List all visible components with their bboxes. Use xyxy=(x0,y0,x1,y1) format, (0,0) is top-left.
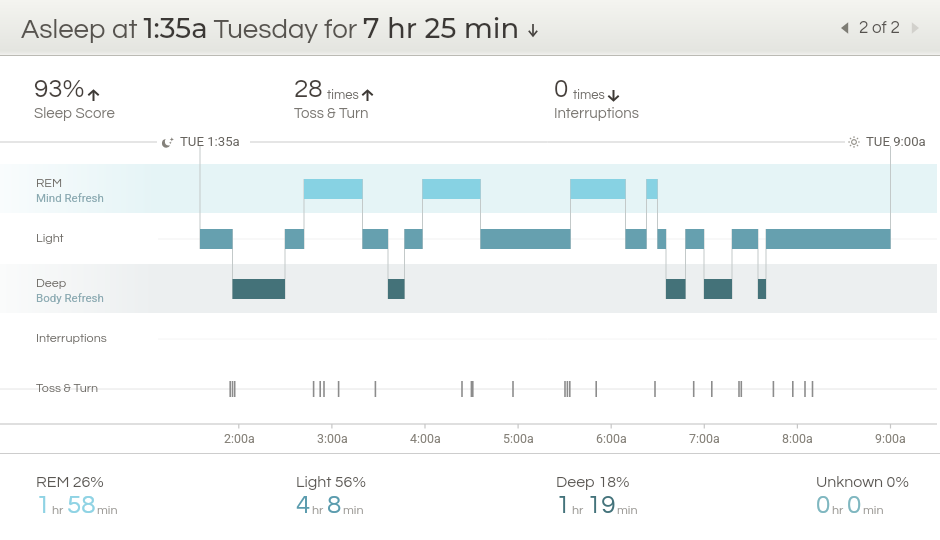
staticText: TUE 1:35a xyxy=(180,134,240,149)
staticText: Asleep at 1:35a Tuesday for 7 hr 25 min xyxy=(21,11,520,45)
button[interactable]: Deep xyxy=(36,277,104,304)
staticText: Deep 18% xyxy=(556,474,630,490)
staticText: hr xyxy=(52,504,64,517)
staticText: Interruptions xyxy=(36,332,107,345)
staticText: times xyxy=(573,88,605,101)
staticText: Deep xyxy=(36,277,67,290)
staticText: 0 xyxy=(816,492,831,519)
button[interactable]: 93% xyxy=(34,76,115,121)
staticText: TUE 9:00a xyxy=(866,134,926,149)
staticText: Mind Refresh xyxy=(36,191,104,204)
staticText: 8 xyxy=(327,492,342,519)
button[interactable]: Next night xyxy=(905,18,925,38)
staticText: Body Refresh xyxy=(36,291,104,304)
staticText: Interruptions xyxy=(554,106,639,121)
staticText: Sleep Score xyxy=(34,106,115,121)
staticText: 1 xyxy=(36,492,51,519)
button[interactable]: Interruptions xyxy=(36,332,107,345)
staticText: Light xyxy=(36,232,64,245)
staticText: 4 xyxy=(296,492,311,519)
staticText: min xyxy=(863,504,884,517)
staticText: times xyxy=(327,88,359,101)
staticText: 1 xyxy=(556,492,571,519)
staticText: 9:00a xyxy=(875,431,906,446)
staticText: min xyxy=(97,504,118,517)
staticText: Unknown 0% xyxy=(816,474,909,490)
staticText: 7:00a xyxy=(689,431,720,446)
staticText: min xyxy=(343,504,364,517)
button[interactable]: Toss & Turn xyxy=(36,382,99,395)
button[interactable]: REM xyxy=(36,177,104,204)
button[interactable]: Unknown 0% xyxy=(816,474,909,519)
staticText: Light 56% xyxy=(296,474,366,490)
staticText: hr xyxy=(572,504,584,517)
staticText: 5:00a xyxy=(503,431,534,446)
staticText: hr xyxy=(832,504,844,517)
staticText: REM 26% xyxy=(36,474,104,490)
staticText: Toss & Turn xyxy=(294,106,369,121)
button[interactable]: Light 56% xyxy=(296,474,366,519)
button[interactable]: 28 xyxy=(294,76,373,121)
button[interactable]: REM 26% xyxy=(36,474,118,519)
staticText: 8:00a xyxy=(782,431,813,446)
staticText: REM xyxy=(36,177,63,190)
staticText: 58 xyxy=(67,492,96,519)
staticText: 0 xyxy=(847,492,862,519)
staticText: 93% xyxy=(34,76,85,103)
button[interactable]: 0 xyxy=(554,76,639,121)
staticText: 4:00a xyxy=(410,431,441,446)
staticText: Toss & Turn xyxy=(36,382,99,395)
staticText: 6:00a xyxy=(596,431,627,446)
button[interactable]: Deep 18% xyxy=(556,474,638,519)
staticText: 2 of 2 xyxy=(859,19,900,37)
staticText: 0 xyxy=(554,76,569,103)
staticText: 2:00a xyxy=(224,431,255,446)
staticText: 28 xyxy=(294,76,323,103)
staticText: 19 xyxy=(587,492,616,519)
staticText: 3:00a xyxy=(317,431,348,446)
button[interactable]: Light xyxy=(36,232,64,245)
staticText: min xyxy=(617,504,638,517)
staticText: hr xyxy=(312,504,324,517)
button[interactable]: Previous night xyxy=(835,18,855,38)
button[interactable]: Asleep at 1:35a Tuesday for 7 hr 25 min xyxy=(21,11,541,45)
